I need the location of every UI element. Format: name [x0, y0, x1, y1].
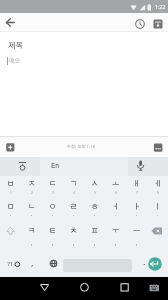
button[interactable]: ㄹ	[63, 200, 84, 214]
button[interactable]: En	[42, 157, 68, 176]
staticText: ,	[31, 260, 34, 268]
staticText: 4	[73, 191, 75, 195]
button[interactable]: ㅋ	[21, 224, 42, 238]
staticText: 5	[94, 191, 96, 195]
staticText: ㅐ	[133, 180, 141, 188]
button[interactable]: ㅅ	[84, 177, 105, 191]
button[interactable]	[151, 141, 166, 155]
button[interactable]: ㅜ	[105, 224, 126, 238]
button[interactable]	[77, 281, 92, 294]
staticText: .	[143, 259, 146, 267]
staticText: ㅅ	[91, 180, 99, 188]
staticText: ㄷ	[49, 180, 57, 188]
staticText: 6	[115, 191, 117, 195]
button[interactable]: .	[139, 256, 149, 270]
button[interactable]	[47, 257, 60, 270]
staticText: ㅣ	[154, 203, 162, 211]
staticText: ㅌ	[49, 227, 57, 235]
button[interactable]	[16, 158, 29, 175]
button[interactable]: ㄷ	[42, 177, 63, 191]
staticText: ㅇ	[49, 203, 57, 211]
button[interactable]: ㄱ	[63, 177, 84, 191]
button[interactable]: ㅔ	[147, 177, 168, 191]
button[interactable]: ,	[26, 257, 38, 271]
button[interactable]	[38, 282, 51, 293]
button[interactable]: ㅐ	[126, 177, 147, 191]
staticText: ?1	[7, 262, 14, 268]
staticText: ㅁ	[7, 203, 15, 211]
button[interactable]: ㅏ	[126, 200, 147, 214]
button[interactable]: ?1	[3, 258, 17, 271]
staticText: ㅡ	[133, 227, 141, 235]
staticText: ㅍ	[91, 227, 99, 235]
staticText: 제목	[8, 42, 24, 50]
button[interactable]: ㅓ	[105, 200, 126, 214]
staticText: ㄱ	[70, 180, 78, 188]
button[interactable]	[152, 18, 164, 30]
staticText: ㅔ	[154, 180, 162, 188]
button[interactable]: ㅇ	[42, 200, 63, 214]
button[interactable]	[150, 224, 166, 238]
button[interactable]	[4, 141, 18, 155]
button[interactable]: ㅍ	[84, 224, 105, 238]
button[interactable]: ㅁ	[0, 200, 21, 214]
staticText: En	[51, 163, 60, 170]
staticText: ㅜ	[112, 227, 120, 235]
staticText: ㅋ	[28, 227, 36, 235]
button[interactable]: ㅂ	[0, 177, 21, 191]
button[interactable]	[3, 16, 17, 29]
button[interactable]: ㅌ	[42, 224, 63, 238]
button[interactable]	[147, 256, 163, 272]
staticText: 메모	[9, 58, 21, 64]
staticText: ㅗ	[112, 180, 120, 188]
button[interactable]	[134, 158, 147, 175]
staticText: ㅏ	[133, 203, 141, 211]
staticText: ㅓ	[112, 203, 120, 211]
button[interactable]: ㅎ	[84, 200, 105, 214]
staticText: ㅎ	[91, 203, 99, 211]
staticText: ㅂ	[7, 180, 15, 188]
button[interactable]: ㅡ	[126, 224, 147, 238]
staticText: ㅊ	[70, 227, 78, 235]
staticText: ㅈ	[28, 180, 36, 188]
staticText: 수정: 오후 1:18	[67, 145, 95, 149]
staticText: 1	[10, 191, 12, 195]
button[interactable]	[134, 18, 146, 30]
button[interactable]: ㄴ	[21, 200, 42, 214]
button[interactable]	[14, 260, 22, 269]
button[interactable]: ㅣ	[147, 200, 168, 214]
button[interactable]	[117, 281, 131, 294]
button[interactable]: ㅈ	[21, 177, 42, 191]
button[interactable]: ㅗ	[105, 177, 126, 191]
staticText: ㄴ	[28, 203, 36, 211]
button[interactable]: ㅊ	[63, 224, 84, 238]
staticText: 3	[52, 191, 54, 195]
staticText: 8	[157, 191, 159, 195]
staticText: 1:22	[155, 3, 166, 10]
staticText: 7	[136, 191, 138, 195]
staticText: 2	[31, 191, 33, 195]
button[interactable]	[146, 282, 162, 294]
staticText: ㄹ	[70, 203, 78, 211]
